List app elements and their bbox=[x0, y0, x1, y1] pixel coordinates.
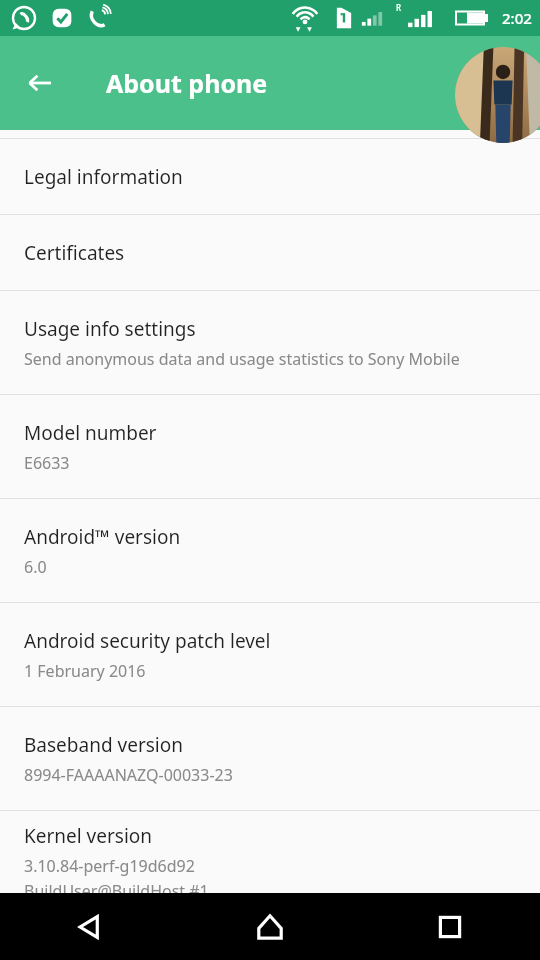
button[interactable]: Android security patch level bbox=[0, 603, 540, 706]
staticText: Certificates bbox=[24, 240, 125, 266]
button[interactable]: Baseband version bbox=[0, 707, 540, 810]
staticText: Model number bbox=[24, 420, 157, 446]
button[interactable]: Certificates bbox=[0, 215, 540, 290]
button[interactable]: Model number bbox=[0, 395, 540, 498]
staticText: 8994-FAAAANAZQ-00033-23 bbox=[24, 764, 233, 786]
button[interactable]: Home bbox=[180, 893, 360, 960]
button[interactable]: Back bbox=[16, 59, 64, 107]
staticText: Android security patch level bbox=[24, 628, 271, 654]
button[interactable]: Android™ version bbox=[0, 499, 540, 602]
staticText: 2:02 bbox=[502, 8, 532, 28]
button[interactable]: Kernel version bbox=[0, 811, 540, 914]
staticText: Usage info settings bbox=[24, 316, 196, 342]
staticText: Android™ version bbox=[24, 524, 181, 550]
staticText: Send anonymous data and usage statistics… bbox=[24, 348, 460, 370]
staticText: Legal information bbox=[24, 164, 183, 190]
staticText: 1 February 2016 bbox=[24, 660, 146, 682]
button[interactable]: Usage info settings bbox=[0, 291, 540, 394]
button[interactable]: Legal information bbox=[0, 139, 540, 214]
staticText: Baseband version bbox=[24, 732, 183, 758]
staticText: BuildUser@BuildHost #1 bbox=[24, 880, 209, 902]
button[interactable]: Recent apps bbox=[360, 893, 540, 960]
staticText: E6633 bbox=[24, 452, 70, 474]
staticText: 3.10.84-perf-g19d6d92 bbox=[24, 855, 195, 877]
button[interactable]: Back bbox=[0, 893, 180, 960]
button[interactable]: Profile photo bbox=[455, 47, 540, 143]
staticText: 6.0 bbox=[24, 556, 47, 578]
staticText: About phone bbox=[106, 66, 268, 100]
staticText: Kernel version bbox=[24, 823, 153, 849]
staticText: R bbox=[396, 2, 402, 13]
